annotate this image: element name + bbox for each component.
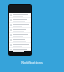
button[interactable] <box>9 43 31 48</box>
button[interactable] <box>9 28 31 33</box>
button[interactable] <box>9 13 31 18</box>
button[interactable] <box>9 33 31 38</box>
button[interactable] <box>9 38 31 43</box>
button[interactable] <box>9 48 31 51</box>
staticText: Notifications <box>21 60 43 65</box>
button[interactable] <box>9 18 31 23</box>
button[interactable] <box>9 23 31 28</box>
